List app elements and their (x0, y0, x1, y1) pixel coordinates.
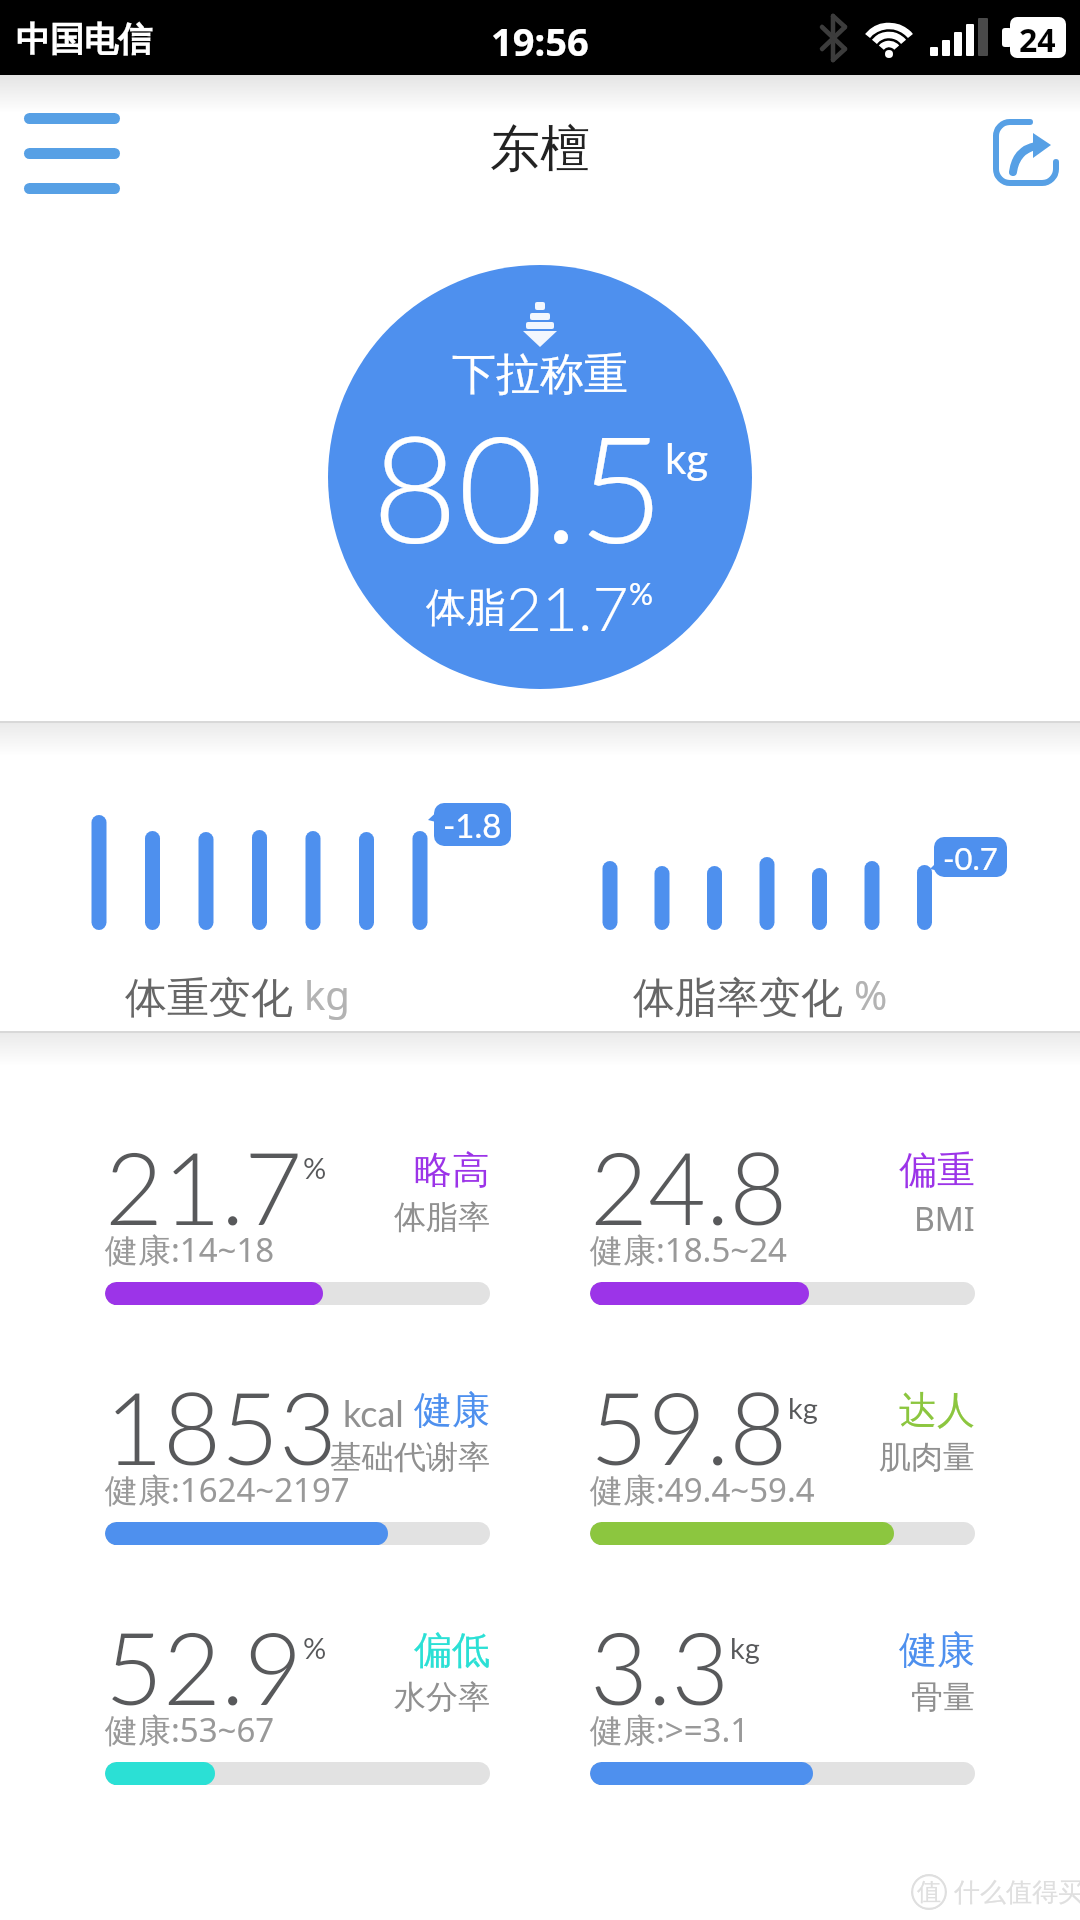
staticText: 21.7 (105, 1126, 303, 1246)
staticText: 健康:>=3.1 (590, 1707, 750, 1752)
staticText: 59.8 (590, 1366, 788, 1486)
button[interactable]: 24.8 (590, 1130, 975, 1330)
staticText: 健康:1624~2197 (105, 1467, 350, 1512)
staticText: 健康:18.5~24 (590, 1227, 787, 1272)
staticText: % (854, 967, 888, 1021)
button[interactable] (10, 98, 130, 208)
button[interactable]: 3.3 (590, 1610, 975, 1810)
staticText: kg (304, 967, 350, 1021)
staticText: 健康:49.4~59.4 (590, 1467, 815, 1512)
staticText: 健康 (899, 1626, 975, 1674)
button[interactable] (980, 110, 1070, 200)
button[interactable]: 下拉称重 (328, 265, 752, 689)
staticText: 52.9 (105, 1606, 303, 1726)
staticText: % (629, 575, 654, 611)
staticText: 下拉称重 (452, 347, 628, 402)
staticText: 健康:14~18 (105, 1227, 275, 1272)
staticText: 骨量 (911, 1677, 975, 1717)
staticText: 19:56 (491, 15, 589, 67)
staticText: 体脂 (426, 582, 506, 632)
staticText: 体脂率 (394, 1197, 490, 1237)
staticText: BMI (914, 1197, 975, 1241)
staticText: 偏低 (414, 1626, 490, 1674)
button[interactable]: 21.7 (105, 1130, 490, 1330)
staticText: 基础代谢率 (330, 1437, 490, 1477)
staticText: kcal (343, 1391, 414, 1434)
staticText: 体重变化 (125, 967, 304, 1024)
staticText: 3.3 (590, 1606, 730, 1726)
button[interactable]: 1853 (105, 1370, 490, 1570)
staticText: 达人 (899, 1386, 975, 1434)
staticText: 1853 (105, 1366, 337, 1486)
staticText: 值 (917, 1877, 941, 1907)
staticText: 24.8 (590, 1126, 788, 1246)
staticText: 水分率 (394, 1677, 490, 1717)
staticText: % (303, 1150, 327, 1185)
staticText: 健康:53~67 (105, 1707, 275, 1752)
staticText: kg (665, 433, 709, 483)
staticText: -0.7 (943, 839, 998, 876)
staticText: 中国电信 (16, 18, 152, 61)
staticText: 健康 (414, 1386, 490, 1434)
staticText: 80.5 (372, 397, 665, 575)
staticText: kg (788, 1390, 818, 1425)
staticText: 略高 (414, 1146, 490, 1194)
staticText: 什么值得买 (954, 1876, 1080, 1909)
staticText: 东檀 (490, 118, 590, 181)
staticText: 体脂率变化 (633, 967, 854, 1024)
button[interactable]: 59.8 (590, 1370, 975, 1570)
staticText: -1.8 (443, 805, 502, 845)
staticText: % (303, 1630, 327, 1665)
staticText: 肌肉量 (879, 1437, 975, 1477)
staticText: kg (730, 1630, 760, 1665)
button[interactable]: 52.9 (105, 1610, 490, 1810)
staticText: 24 (1019, 18, 1056, 62)
staticText: 偏重 (899, 1146, 975, 1194)
staticText: 21.7 (506, 570, 629, 644)
